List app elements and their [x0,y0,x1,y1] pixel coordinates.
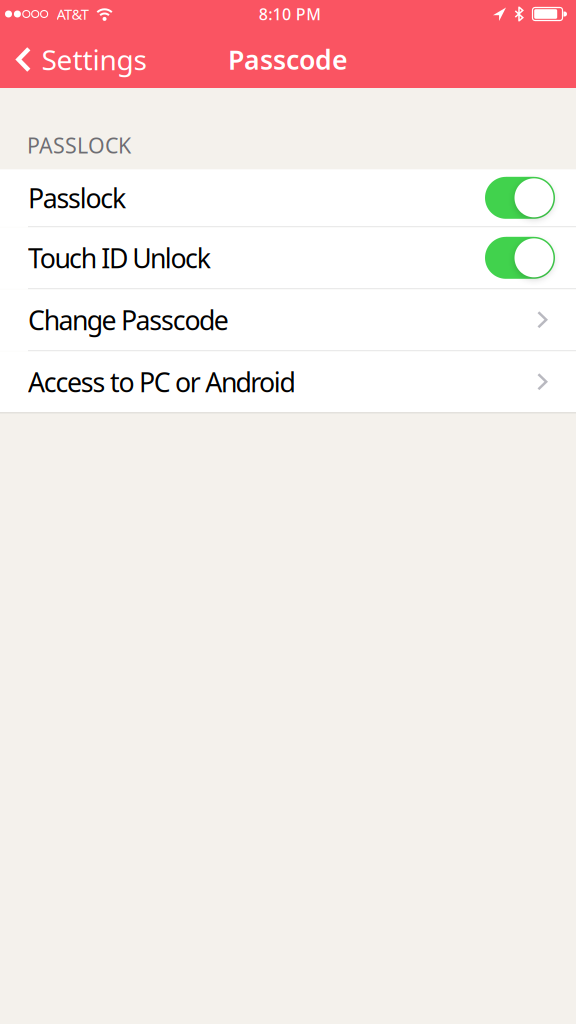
button[interactable]: Back to Settings [16,41,146,78]
staticText: Passcode [228,42,348,77]
staticText: PASSLOCK [27,131,131,159]
staticText: AT&T [57,4,89,24]
staticText: Touch ID Unlock [28,240,211,275]
staticText: Change Passcode [28,302,229,337]
staticText: Access to PC or Android [28,364,295,399]
button[interactable]: Passlock [0,169,576,226]
staticText: 8:10 PM [259,3,321,25]
staticText: Passlock [28,180,126,215]
button[interactable]: Change Passcode [0,289,576,350]
button[interactable]: Touch ID Unlock [0,227,576,288]
staticText: Settings [41,41,146,78]
button[interactable]: Access to PC or Android [0,351,576,412]
